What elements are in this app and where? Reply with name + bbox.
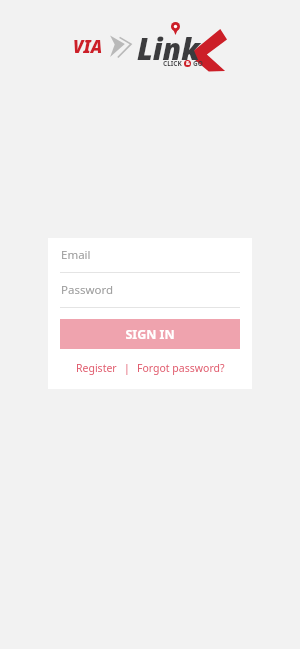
button[interactable]: Password: [48, 273, 252, 307]
staticText: GO: [193, 59, 203, 68]
staticText: Link: [137, 28, 200, 69]
button[interactable]: Forgot password?: [133, 359, 229, 377]
button[interactable]: SIGN IN: [60, 319, 240, 349]
button[interactable]: Email: [48, 238, 252, 272]
staticText: |: [124, 361, 130, 375]
staticText: Forgot password?: [137, 361, 225, 375]
staticText: CLICK: [163, 59, 182, 68]
staticText: Email: [61, 247, 91, 263]
staticText: &: [186, 60, 190, 67]
staticText: SIGN IN: [125, 326, 175, 343]
staticText: Password: [61, 282, 114, 298]
staticText: VIA: [73, 35, 103, 58]
button[interactable]: Register: [72, 359, 121, 377]
other: VIA Link Click and Go logo: [71, 22, 229, 74]
staticText: Register: [76, 361, 117, 375]
